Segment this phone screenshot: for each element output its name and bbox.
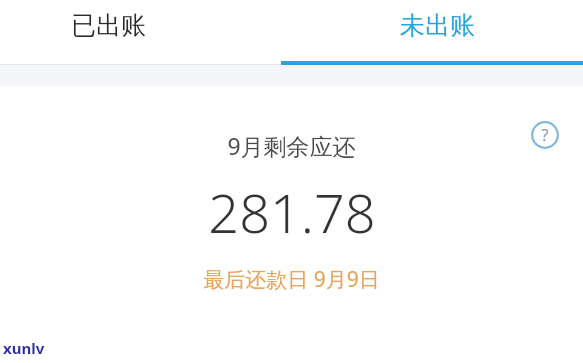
staticText: ?: [541, 123, 549, 146]
button[interactable]: 已出账: [0, 0, 281, 65]
staticText: 最后还款日 9月9日: [203, 265, 380, 294]
staticText: 已出账: [71, 10, 146, 41]
button[interactable]: Help: [531, 121, 559, 149]
staticText: 未出账: [400, 10, 475, 41]
staticText: 281.78: [208, 175, 376, 249]
staticText: xunlv: [3, 338, 45, 358]
button[interactable]: 未出账: [281, 0, 583, 65]
staticText: 9月剩余应还: [227, 130, 356, 161]
